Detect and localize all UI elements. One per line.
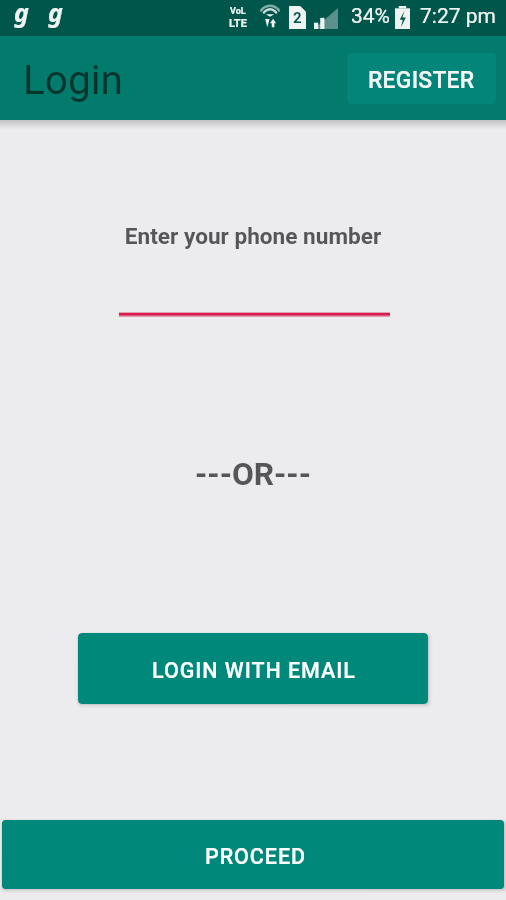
staticText: LTE [229,17,247,30]
staticText: PROCEED [205,844,307,869]
staticText: ---OR--- [0,456,506,493]
staticText: g [48,0,63,29]
staticText: REGISTER [368,67,475,94]
button[interactable]: PROCEED [2,820,504,889]
staticText: Enter your phone number [0,223,506,249]
staticText: 34% [351,4,390,29]
staticText: LOGIN WITH EMAIL [152,658,356,683]
button[interactable]: LOGIN WITH EMAIL [78,633,428,704]
button[interactable]: Phone number input field [119,270,390,318]
button[interactable]: REGISTER [347,53,496,104]
staticText: VoL [230,6,246,17]
staticText: g [14,0,29,29]
staticText: 7:27 pm [420,4,496,29]
staticText: 2 [293,9,302,27]
staticText: Login [23,56,123,103]
